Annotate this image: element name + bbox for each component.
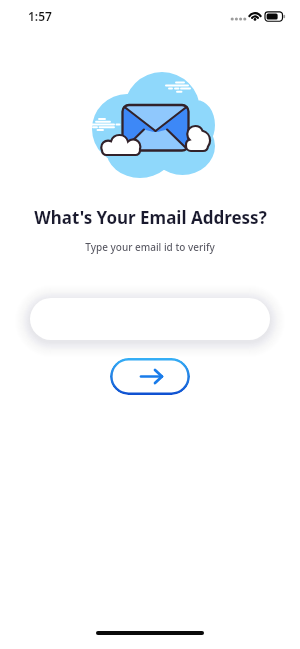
staticText: What's Your Email Address?	[34, 206, 267, 229]
button[interactable]	[30, 298, 270, 340]
staticText: Type your email id to verify	[85, 240, 215, 254]
staticText: 1:57	[28, 8, 52, 24]
button[interactable]: Continue	[110, 358, 190, 395]
